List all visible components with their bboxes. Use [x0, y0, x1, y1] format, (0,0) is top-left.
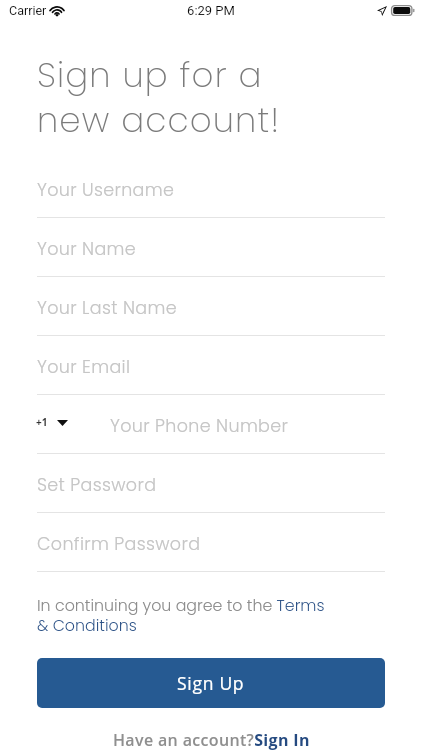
- staticText: Your Username: [37, 178, 175, 203]
- button[interactable]: [37, 291, 385, 336]
- button[interactable]: [37, 409, 385, 454]
- other: Location: [377, 6, 387, 16]
- staticText: Your Phone Number: [110, 414, 289, 439]
- staticText: Your Last Name: [37, 296, 177, 321]
- button[interactable]: [37, 468, 385, 513]
- staticText: 6:29 PM: [0, 3, 422, 18]
- staticText: Sign up for a new account!: [37, 51, 281, 144]
- staticText: Carrier: [9, 3, 47, 18]
- staticText: Confirm Password: [37, 532, 201, 557]
- staticText: +1: [36, 415, 48, 429]
- staticText: Have an account?Sign In: [113, 729, 310, 750]
- button[interactable]: In continuing you agree to the Terms & C…: [37, 594, 335, 636]
- button[interactable]: Select country code: [30, 404, 78, 442]
- staticText: Your Name: [37, 237, 137, 262]
- button[interactable]: [37, 173, 385, 218]
- staticText: Set Password: [37, 473, 157, 498]
- button[interactable]: [37, 232, 385, 277]
- button[interactable]: Have an account?Sign In: [0, 729, 422, 750]
- button[interactable]: [37, 527, 385, 572]
- button[interactable]: Sign Up: [37, 658, 385, 708]
- staticText: Your Email: [37, 355, 131, 380]
- staticText: Sign Up: [177, 671, 245, 695]
- button[interactable]: [37, 350, 385, 395]
